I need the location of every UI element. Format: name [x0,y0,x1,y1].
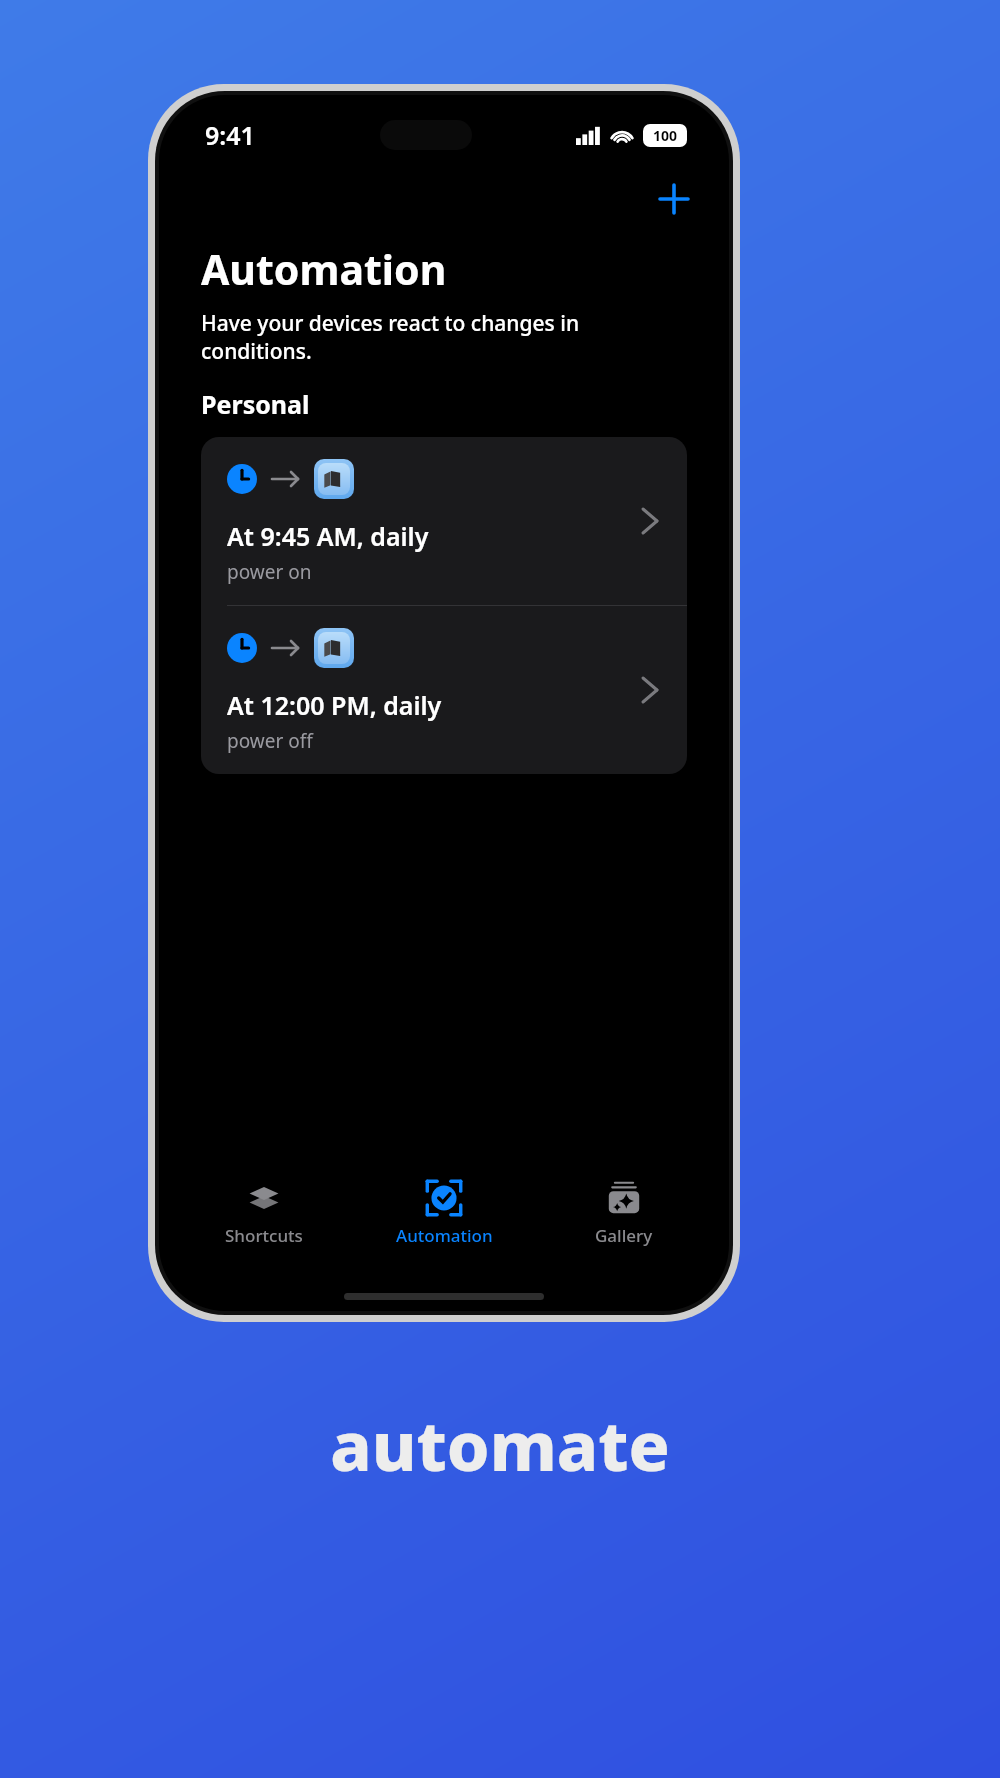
button[interactable]: At 9:45 AM, daily [201,437,687,605]
staticText: Shortcuts [225,1224,303,1247]
staticText: 100 [653,126,678,145]
button[interactable]: Gallery [549,1173,699,1253]
staticText: At 9:45 AM, daily [227,519,429,553]
staticText: Personal [201,387,310,421]
button[interactable]: Shortcuts [189,1173,339,1253]
button[interactable]: Automation [369,1173,519,1253]
staticText: Automation [396,1224,493,1247]
staticText: automate [330,1398,670,1491]
staticText: 9:41 [205,118,255,152]
staticText: Have your devices react to changes in co… [201,309,687,365]
staticText: Gallery [595,1224,653,1247]
staticText: Automation [201,241,447,297]
staticText: At 12:00 PM, daily [227,688,442,722]
staticText: power off [227,728,313,754]
button[interactable]: At 12:00 PM, daily [201,606,687,774]
staticText: power on [227,559,312,585]
button[interactable]: Add automation [651,176,697,222]
